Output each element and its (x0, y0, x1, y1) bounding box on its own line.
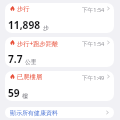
staticText: 下午1:54 (82, 6, 105, 14)
staticText: 公里 (25, 58, 37, 65)
staticText: 下午1:54 (82, 40, 105, 48)
staticText: 7.7 (8, 52, 23, 66)
button[interactable]: 已爬樓層 (5, 71, 114, 101)
button[interactable]: 步行 (5, 3, 114, 33)
button[interactable]: 顯示所有健康資料 (5, 107, 114, 118)
staticText: 59 (8, 86, 20, 100)
staticText: 顯示所有健康資料 (10, 109, 58, 117)
staticText: 下午1:49 (82, 74, 105, 82)
staticText: 步行+跑步距離 (17, 39, 59, 48)
button[interactable]: 步行+跑步距離 (5, 37, 114, 67)
staticText: 11,898 (8, 18, 41, 32)
staticText: 步行 (17, 5, 30, 13)
staticText: 步 (43, 24, 49, 31)
staticText: 樓 (22, 92, 28, 99)
other: Show all health data (105, 110, 110, 115)
staticText: 已爬樓層 (17, 73, 43, 81)
